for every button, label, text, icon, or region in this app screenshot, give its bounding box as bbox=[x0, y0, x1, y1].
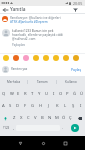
staticText: I bbox=[53, 91, 55, 97]
staticText: G bbox=[31, 103, 35, 109]
staticText: W bbox=[10, 91, 14, 97]
staticText: H bbox=[39, 103, 43, 109]
button[interactable]: N bbox=[46, 112, 53, 124]
button[interactable]: Emoji bbox=[73, 55, 79, 61]
staticText: X bbox=[20, 115, 23, 121]
staticText: C bbox=[27, 115, 30, 121]
button[interactable]: Emoji bbox=[53, 55, 59, 61]
button[interactable]: Z bbox=[10, 112, 18, 124]
staticText: Z bbox=[13, 115, 16, 121]
button[interactable]: Backspace bbox=[74, 112, 85, 124]
button[interactable]: Emoji bbox=[3, 55, 9, 61]
staticText: T bbox=[31, 91, 34, 97]
staticText: Ü bbox=[80, 91, 84, 97]
staticText: Ğ bbox=[73, 91, 77, 97]
staticText: kullanici1233 Bunun icin pek bbox=[12, 29, 54, 33]
button[interactable]: Merhaba bbox=[0, 76, 27, 88]
button[interactable]: I bbox=[50, 88, 57, 100]
button[interactable]: Tamam bbox=[28, 76, 56, 88]
button[interactable]: R bbox=[22, 88, 29, 100]
button[interactable]: Emoji bbox=[33, 55, 39, 61]
staticText: Ç bbox=[69, 115, 72, 121]
button[interactable]: O bbox=[57, 88, 64, 100]
staticText: P bbox=[66, 91, 69, 97]
button[interactable]: T bbox=[29, 88, 36, 100]
button[interactable]: E bbox=[15, 88, 22, 100]
button[interactable]: J bbox=[45, 100, 53, 112]
staticText: Y bbox=[38, 91, 41, 97]
button[interactable]: Emoji bbox=[43, 55, 49, 61]
button[interactable]: W bbox=[8, 88, 15, 100]
button[interactable]: Kullanıcı bbox=[57, 76, 85, 88]
staticText: #TSK #Şanlıurfa #Deprem bbox=[10, 20, 48, 24]
staticText: , bbox=[13, 125, 15, 131]
staticText: I bbox=[80, 103, 82, 109]
button[interactable]: Ğ bbox=[71, 88, 78, 100]
staticText: Merhaba bbox=[7, 80, 21, 84]
staticText: D bbox=[16, 103, 20, 109]
button[interactable]: Home bbox=[35, 136, 51, 150]
staticText: O bbox=[59, 91, 63, 97]
staticText: L bbox=[64, 103, 67, 109]
button[interactable]: Emoji bbox=[23, 55, 29, 61]
staticText: Yanıtını yaz bbox=[11, 67, 28, 71]
button[interactable]: Back bbox=[0, 6, 10, 13]
button[interactable]: K bbox=[53, 100, 61, 112]
button[interactable]: G bbox=[29, 100, 37, 112]
button[interactable]: Filter bbox=[70, 6, 81, 13]
button[interactable]: . bbox=[60, 124, 65, 132]
button[interactable]: Ş bbox=[69, 100, 77, 112]
button[interactable]: A bbox=[0, 100, 7, 112]
staticText: B bbox=[41, 115, 44, 121]
staticText: N bbox=[48, 115, 52, 121]
staticText: Yanıtlanıyor: @kullanici ve diğerleri bbox=[10, 16, 61, 20]
staticText: @nulhost2 .com bbox=[12, 37, 36, 41]
staticText: U bbox=[45, 91, 49, 97]
staticText: . bbox=[62, 125, 64, 131]
staticText: F bbox=[24, 103, 27, 109]
staticText: K bbox=[56, 103, 59, 109]
button[interactable]: , bbox=[12, 124, 16, 132]
staticText: V bbox=[34, 115, 37, 121]
button[interactable]: B bbox=[39, 112, 46, 124]
button[interactable]: I bbox=[77, 100, 85, 112]
button[interactable]: C bbox=[25, 112, 32, 124]
staticText: hazırladık, ellerde ve paylaştık ciddi bbox=[12, 33, 64, 37]
button[interactable]: Ç bbox=[67, 112, 74, 124]
button[interactable]: F bbox=[21, 100, 29, 112]
button[interactable]: D bbox=[14, 100, 21, 112]
button[interactable]: P bbox=[64, 88, 71, 100]
staticText: E bbox=[17, 91, 20, 97]
button[interactable]: Ü bbox=[78, 88, 85, 100]
button[interactable]: Q bbox=[0, 88, 8, 100]
staticText: Tamam bbox=[37, 80, 48, 84]
button[interactable]: S bbox=[7, 100, 14, 112]
button[interactable]: Recents bbox=[57, 136, 73, 150]
staticText: 20:05 bbox=[73, 1, 83, 6]
button[interactable]: Shift bbox=[0, 112, 10, 124]
button[interactable]: Yanıtını yaz bbox=[11, 62, 70, 76]
button[interactable]: Send bbox=[71, 124, 79, 132]
staticText: Q bbox=[2, 91, 6, 97]
button[interactable]: M bbox=[53, 112, 60, 124]
button[interactable]: ?123 bbox=[0, 124, 12, 132]
button[interactable]: Back bbox=[12, 136, 28, 150]
staticText: Ö bbox=[62, 115, 66, 121]
staticText: M bbox=[55, 115, 59, 121]
button[interactable]: X bbox=[18, 112, 25, 124]
staticText: Paylaş bbox=[71, 67, 82, 72]
button[interactable]: Y bbox=[36, 88, 43, 100]
staticText: Paylaşılan: bbox=[12, 43, 26, 47]
button[interactable]: Paylaş bbox=[70, 62, 83, 76]
staticText: A bbox=[2, 103, 5, 109]
button[interactable]: Emoji bbox=[63, 55, 69, 61]
staticText: S bbox=[9, 103, 12, 109]
button[interactable]: H bbox=[37, 100, 45, 112]
staticText: J bbox=[48, 103, 50, 109]
button[interactable]: U bbox=[43, 88, 50, 100]
button[interactable]: Emoji bbox=[13, 55, 19, 61]
button[interactable]: V bbox=[32, 112, 39, 124]
button[interactable]: Ö bbox=[60, 112, 67, 124]
button[interactable]: L bbox=[61, 100, 69, 112]
